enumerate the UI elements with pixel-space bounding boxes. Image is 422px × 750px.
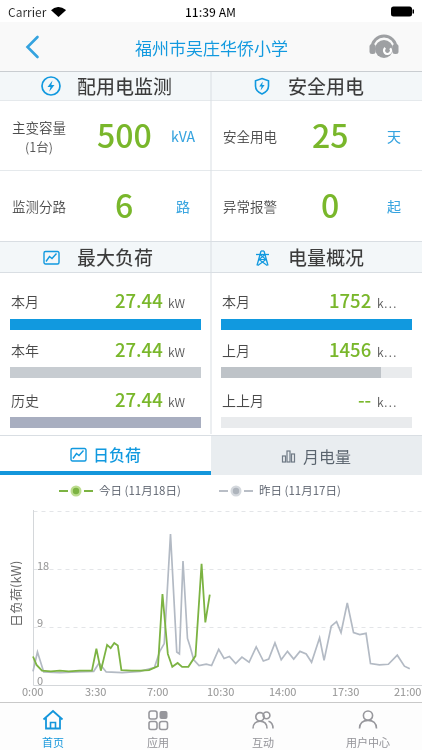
staticText: 监测分路 [12, 196, 66, 216]
staticText: kW [168, 294, 186, 311]
staticText: 路 [176, 196, 190, 216]
staticText: kVA [171, 126, 196, 146]
staticText: 安全用电 [288, 72, 365, 100]
staticText: kW [168, 393, 186, 410]
staticText: 日负荷 [93, 442, 142, 465]
staticText: 9 [37, 614, 44, 630]
button[interactable]: 首页 [0, 703, 105, 750]
staticText: 0 [37, 672, 44, 688]
staticText: 10:30 [207, 683, 235, 699]
staticText: k… [377, 294, 397, 311]
staticText: (1台) [25, 137, 53, 155]
button[interactable]: 月电量 [211, 436, 422, 475]
staticText: 昨日 (11月17日) [259, 482, 341, 499]
staticText: 27.44 [115, 386, 163, 413]
staticText: 14:00 [269, 683, 297, 699]
staticText: 本月 [222, 291, 250, 311]
staticText: 应用 [147, 734, 169, 750]
staticText: 18 [37, 557, 50, 573]
staticText: 1752 [329, 287, 372, 314]
staticText: 天 [387, 126, 401, 146]
staticText: 1456 [329, 336, 372, 363]
button[interactable] [18, 33, 46, 61]
staticText: 首页 [42, 734, 64, 750]
staticText: 主变容量 [12, 117, 66, 137]
staticText: 本月 [11, 291, 39, 311]
staticText: 起 [387, 196, 401, 216]
staticText: kW [168, 343, 186, 360]
staticText: 今日 (11月18日) [99, 482, 181, 499]
staticText: k… [377, 393, 397, 410]
staticText: 0 [321, 181, 340, 227]
staticText: 上上月 [222, 390, 264, 410]
staticText: 17:30 [332, 683, 360, 699]
staticText: 本年 [11, 340, 39, 360]
button[interactable]: 用户中心 [315, 703, 420, 750]
staticText: 25 [312, 111, 349, 157]
staticText: -- [358, 386, 372, 413]
staticText: 配用电监测 [77, 72, 173, 100]
staticText: 上月 [222, 340, 250, 360]
button[interactable]: 日负荷 [0, 436, 211, 475]
staticText: 3:30 [85, 683, 107, 699]
staticText: k… [377, 343, 397, 360]
staticText: 用户中心 [346, 734, 390, 750]
staticText: 互动 [252, 734, 274, 750]
staticText: 21:00 [394, 683, 422, 699]
staticText: 11:39 AM [185, 3, 237, 20]
staticText: 0:00 [22, 683, 44, 699]
staticText: 27.44 [115, 336, 163, 363]
button[interactable]: 应用 [105, 703, 210, 750]
staticText: Carrier [8, 3, 47, 20]
staticText: 27.44 [115, 287, 163, 314]
staticText: 7:00 [147, 683, 169, 699]
button[interactable]: 互动 [210, 703, 315, 750]
staticText: 电量概况 [288, 243, 365, 271]
staticText: 6 [115, 181, 134, 227]
button[interactable] [368, 31, 400, 63]
staticText: 500 [97, 111, 152, 157]
staticText: 日负荷(kW) [6, 560, 22, 627]
staticText: 异常报警 [223, 196, 277, 216]
staticText: 安全用电 [223, 126, 277, 146]
staticText: 福州市吴庄华侨小学 [135, 35, 288, 60]
staticText: 最大负荷 [77, 243, 154, 271]
staticText: 历史 [11, 390, 39, 410]
staticText: 月电量 [303, 444, 352, 467]
